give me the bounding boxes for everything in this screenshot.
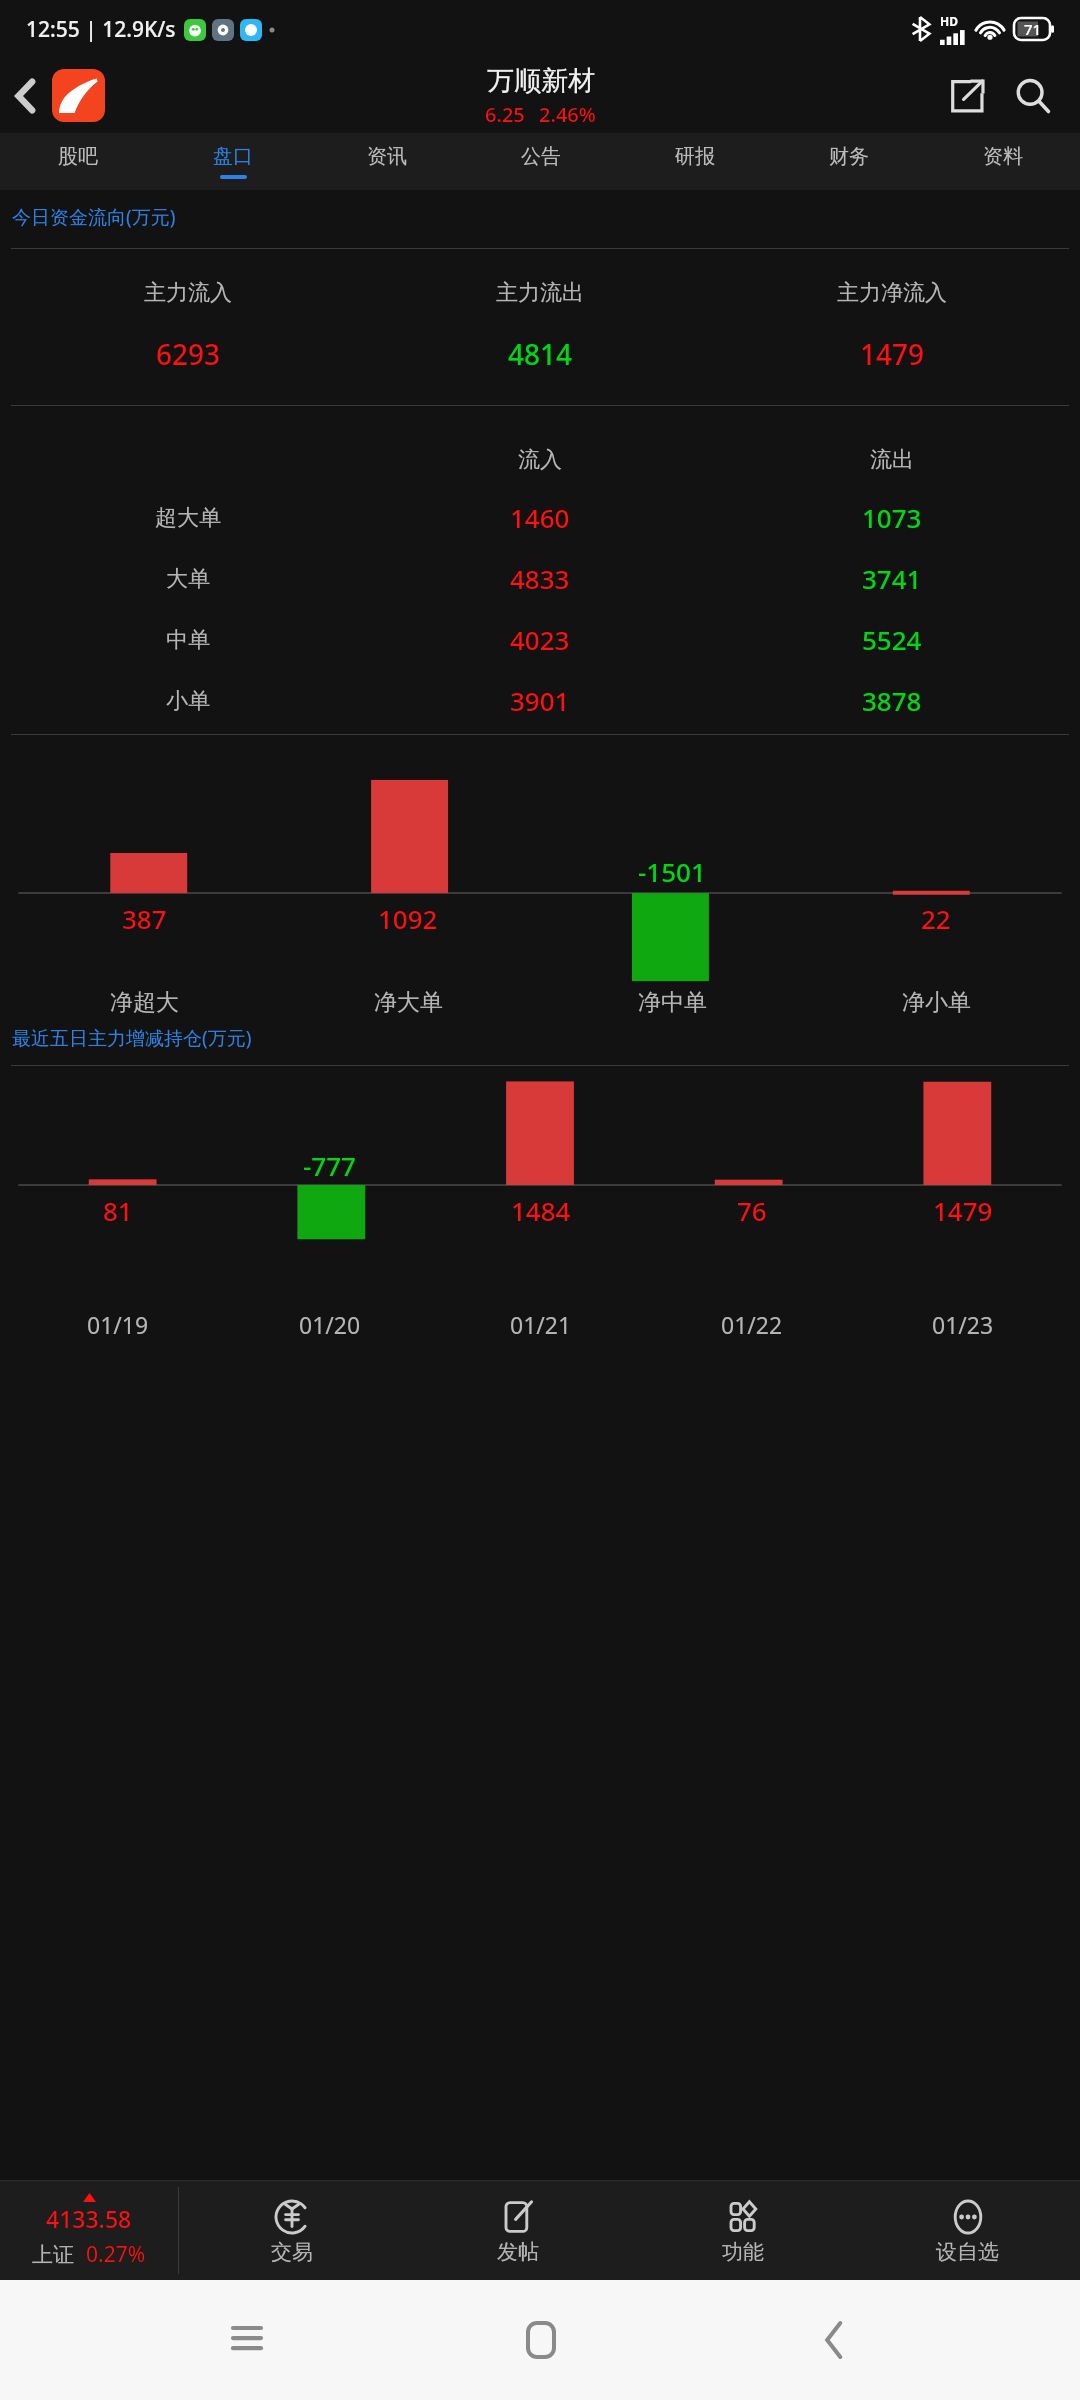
staticText: 主力净流入 (837, 279, 947, 307)
button[interactable]: 公告 (464, 133, 618, 190)
staticText: 01/21 (510, 1309, 572, 1340)
staticText: -777 (303, 1148, 356, 1183)
button[interactable]: Share (938, 67, 996, 125)
staticText: 股吧 (58, 144, 98, 169)
staticText: 净大单 (374, 988, 443, 1017)
staticText: 中单 (166, 626, 210, 654)
staticText: 万顺新材 (487, 64, 595, 98)
button[interactable]: 财务 (772, 133, 926, 190)
staticText: 76 (737, 1193, 767, 1228)
staticText: 22 (921, 901, 951, 936)
staticText: 上证 (32, 2242, 74, 2268)
staticText: 财务 (829, 144, 869, 169)
staticText: 3878 (862, 683, 922, 718)
staticText: 12:55 | 12.9K/s (26, 15, 176, 44)
staticText: 1073 (862, 500, 922, 535)
staticText: 3741 (862, 561, 922, 596)
staticText: 0.27% (86, 2240, 146, 2269)
button[interactable]: 设自选 (855, 2181, 1080, 2280)
button[interactable]: Back (0, 70, 52, 122)
staticText: 流出 (870, 446, 914, 474)
staticText: 1092 (378, 901, 438, 936)
staticText: 1460 (510, 500, 570, 535)
staticText: 最近五日主力增减持仓(万元) (12, 1025, 252, 1051)
staticText: 4833 (510, 561, 570, 596)
staticText: 387 (122, 901, 167, 936)
staticText: 发帖 (497, 2239, 539, 2265)
staticText: 01/23 (932, 1309, 994, 1340)
staticText: 1479 (860, 335, 925, 373)
staticText: 3901 (510, 683, 570, 718)
staticText: 大单 (166, 565, 210, 593)
staticText: 净小单 (902, 988, 971, 1017)
staticText: 资料 (983, 144, 1023, 169)
staticText: 设自选 (936, 2239, 999, 2265)
staticText: -1501 (638, 854, 706, 889)
staticText: 6.25 (485, 101, 525, 128)
staticText: 主力流出 (496, 279, 584, 307)
staticText: 4814 (508, 335, 573, 373)
staticText: 主力流入 (144, 279, 232, 307)
staticText: 81 (103, 1193, 133, 1228)
button[interactable]: 资讯 (310, 133, 464, 190)
staticText: 流入 (518, 446, 562, 474)
button[interactable]: 功能 (630, 2181, 855, 2280)
button[interactable]: 盘口 (155, 133, 310, 190)
button[interactable]: Back (687, 2280, 980, 2400)
staticText: 01/19 (87, 1309, 149, 1340)
staticText: 净中单 (638, 988, 707, 1017)
staticText: 小单 (166, 687, 210, 715)
staticText: 2.46% (539, 101, 596, 128)
staticText: 交易 (271, 2239, 313, 2265)
staticText: 超大单 (155, 504, 221, 532)
button[interactable]: App logo (52, 69, 105, 122)
staticText: 1484 (511, 1193, 571, 1228)
staticText: 研报 (675, 144, 715, 169)
staticText: 盘口 (213, 144, 253, 169)
button[interactable]: Home (394, 2280, 687, 2400)
staticText: 6293 (156, 335, 221, 373)
staticText: 净超大 (110, 988, 179, 1017)
button[interactable]: Search (1004, 67, 1062, 125)
staticText: 5524 (862, 622, 922, 657)
staticText: 资讯 (367, 144, 407, 169)
staticText: 01/22 (721, 1309, 783, 1340)
button[interactable]: 股吧 (0, 133, 155, 190)
staticText: 公告 (521, 144, 561, 169)
staticText: 1479 (933, 1193, 993, 1228)
staticText: 4133.58 (46, 2203, 132, 2234)
button[interactable]: 发帖 (405, 2181, 630, 2280)
button[interactable]: 交易 (179, 2181, 405, 2280)
staticText: 01/20 (299, 1309, 361, 1340)
staticText: HD (940, 13, 958, 29)
staticText: 4023 (510, 622, 570, 657)
staticText: 功能 (722, 2239, 764, 2265)
button[interactable]: 4133.58 (0, 2181, 178, 2280)
button[interactable]: 研报 (618, 133, 772, 190)
staticText: 今日资金流向(万元) (12, 204, 176, 230)
staticText: 71 (1024, 19, 1042, 39)
button[interactable]: Recents (100, 2280, 394, 2400)
button[interactable]: 资料 (926, 133, 1080, 190)
